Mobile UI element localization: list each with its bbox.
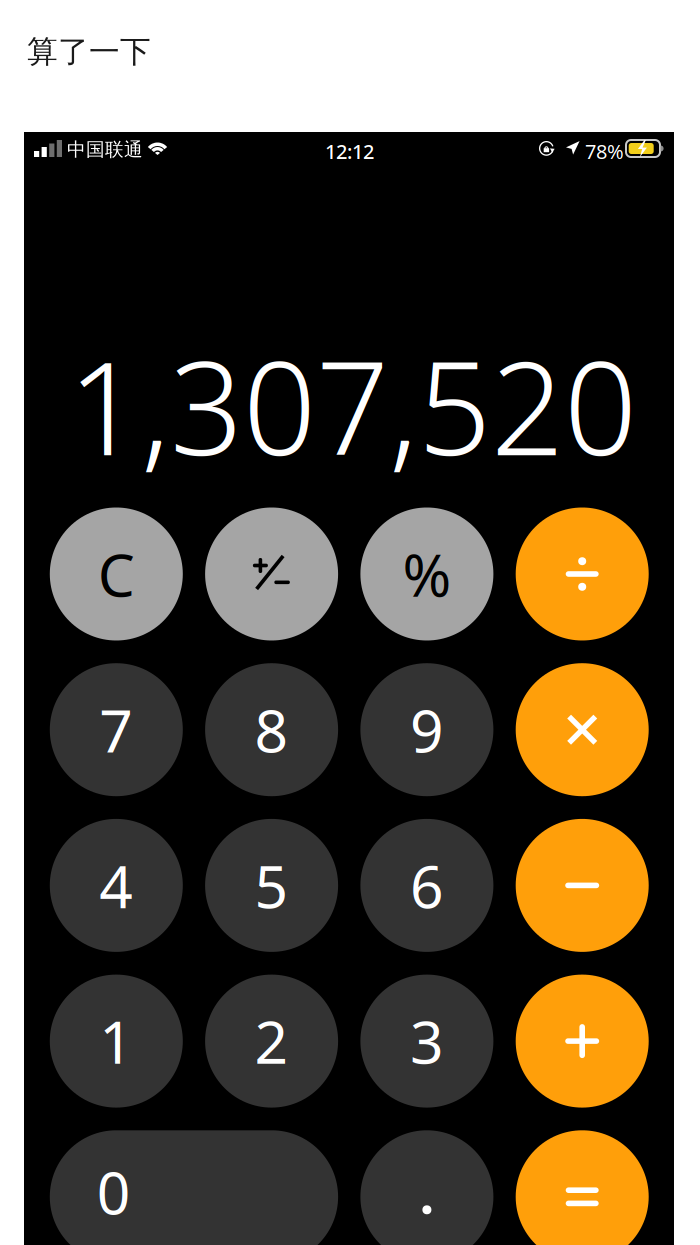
button[interactable]: Multiply (516, 663, 649, 796)
staticText: 12:12 (325, 138, 374, 165)
button[interactable]: % (360, 507, 493, 640)
staticText: 9 (410, 691, 444, 769)
staticText: 8 (255, 691, 289, 769)
button[interactable]: Subtract (516, 819, 649, 952)
button[interactable]: Equals (516, 1130, 649, 1245)
staticText: 1 (99, 1002, 133, 1080)
staticText: 4 (99, 846, 133, 924)
button[interactable]: Plus minus (205, 507, 338, 640)
button[interactable]: 8 (205, 663, 338, 796)
button[interactable]: C (50, 507, 183, 640)
button[interactable]: 4 (50, 819, 183, 952)
staticText: C (98, 535, 135, 613)
button[interactable]: 3 (360, 975, 493, 1108)
button[interactable]: 7 (50, 663, 183, 796)
button[interactable]: Divide (516, 507, 649, 640)
staticText: 6 (410, 846, 444, 924)
staticText: 中国联通 (67, 138, 143, 161)
staticText: 78% (585, 138, 624, 165)
button[interactable]: 0 (50, 1130, 338, 1245)
button[interactable]: Add (516, 975, 649, 1108)
staticText: 3 (410, 1002, 444, 1080)
staticText: 5 (255, 846, 289, 924)
staticText: 0 (97, 1153, 131, 1231)
staticText: % (402, 535, 451, 613)
button[interactable]: 6 (360, 819, 493, 952)
staticText: 7 (99, 691, 133, 769)
button[interactable]: Decimal point (360, 1130, 493, 1245)
staticText: 2 (255, 1002, 289, 1080)
staticText: 1,307,520 (68, 320, 637, 490)
staticText: 算了一下 (27, 33, 151, 71)
button[interactable]: 5 (205, 819, 338, 952)
button[interactable]: 2 (205, 975, 338, 1108)
button[interactable]: 9 (360, 663, 493, 796)
button[interactable]: 1 (50, 975, 183, 1108)
